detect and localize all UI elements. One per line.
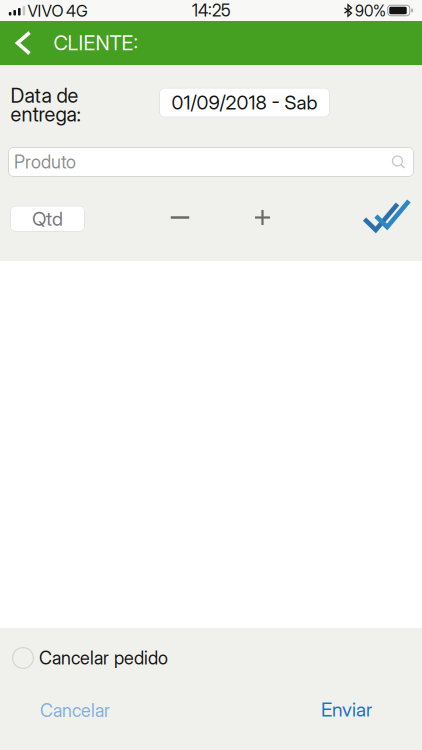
staticText: 90% (355, 2, 386, 20)
staticText: 4G (66, 1, 88, 21)
staticText: CLIENTE: (53, 31, 137, 55)
button[interactable]: Qtd (10, 205, 85, 232)
staticText: Produto (14, 151, 76, 173)
button[interactable]: Decrease quantity (171, 208, 189, 227)
staticText: Enviar (321, 698, 372, 721)
staticText: VIVO (27, 1, 63, 21)
button[interactable]: Confirm (362, 197, 412, 233)
button[interactable]: Increase quantity (255, 210, 270, 225)
button[interactable]: 01/09/2018 - Sab (159, 87, 330, 117)
staticText: Cancelar (40, 700, 110, 721)
button[interactable]: Enviar (321, 698, 372, 721)
staticText: 14:25 (192, 0, 231, 21)
staticText: entrega: (10, 102, 80, 126)
staticText: 01/09/2018 - Sab (171, 91, 317, 114)
staticText: Qtd (32, 207, 63, 230)
staticText: Cancelar pedido (39, 647, 168, 669)
button[interactable]: Back (7, 22, 39, 63)
button[interactable]: Cancelar pedido (12, 647, 34, 669)
button[interactable]: Cancelar (40, 700, 110, 721)
staticText: Data de (10, 83, 78, 107)
button[interactable]: Produto (8, 147, 414, 177)
